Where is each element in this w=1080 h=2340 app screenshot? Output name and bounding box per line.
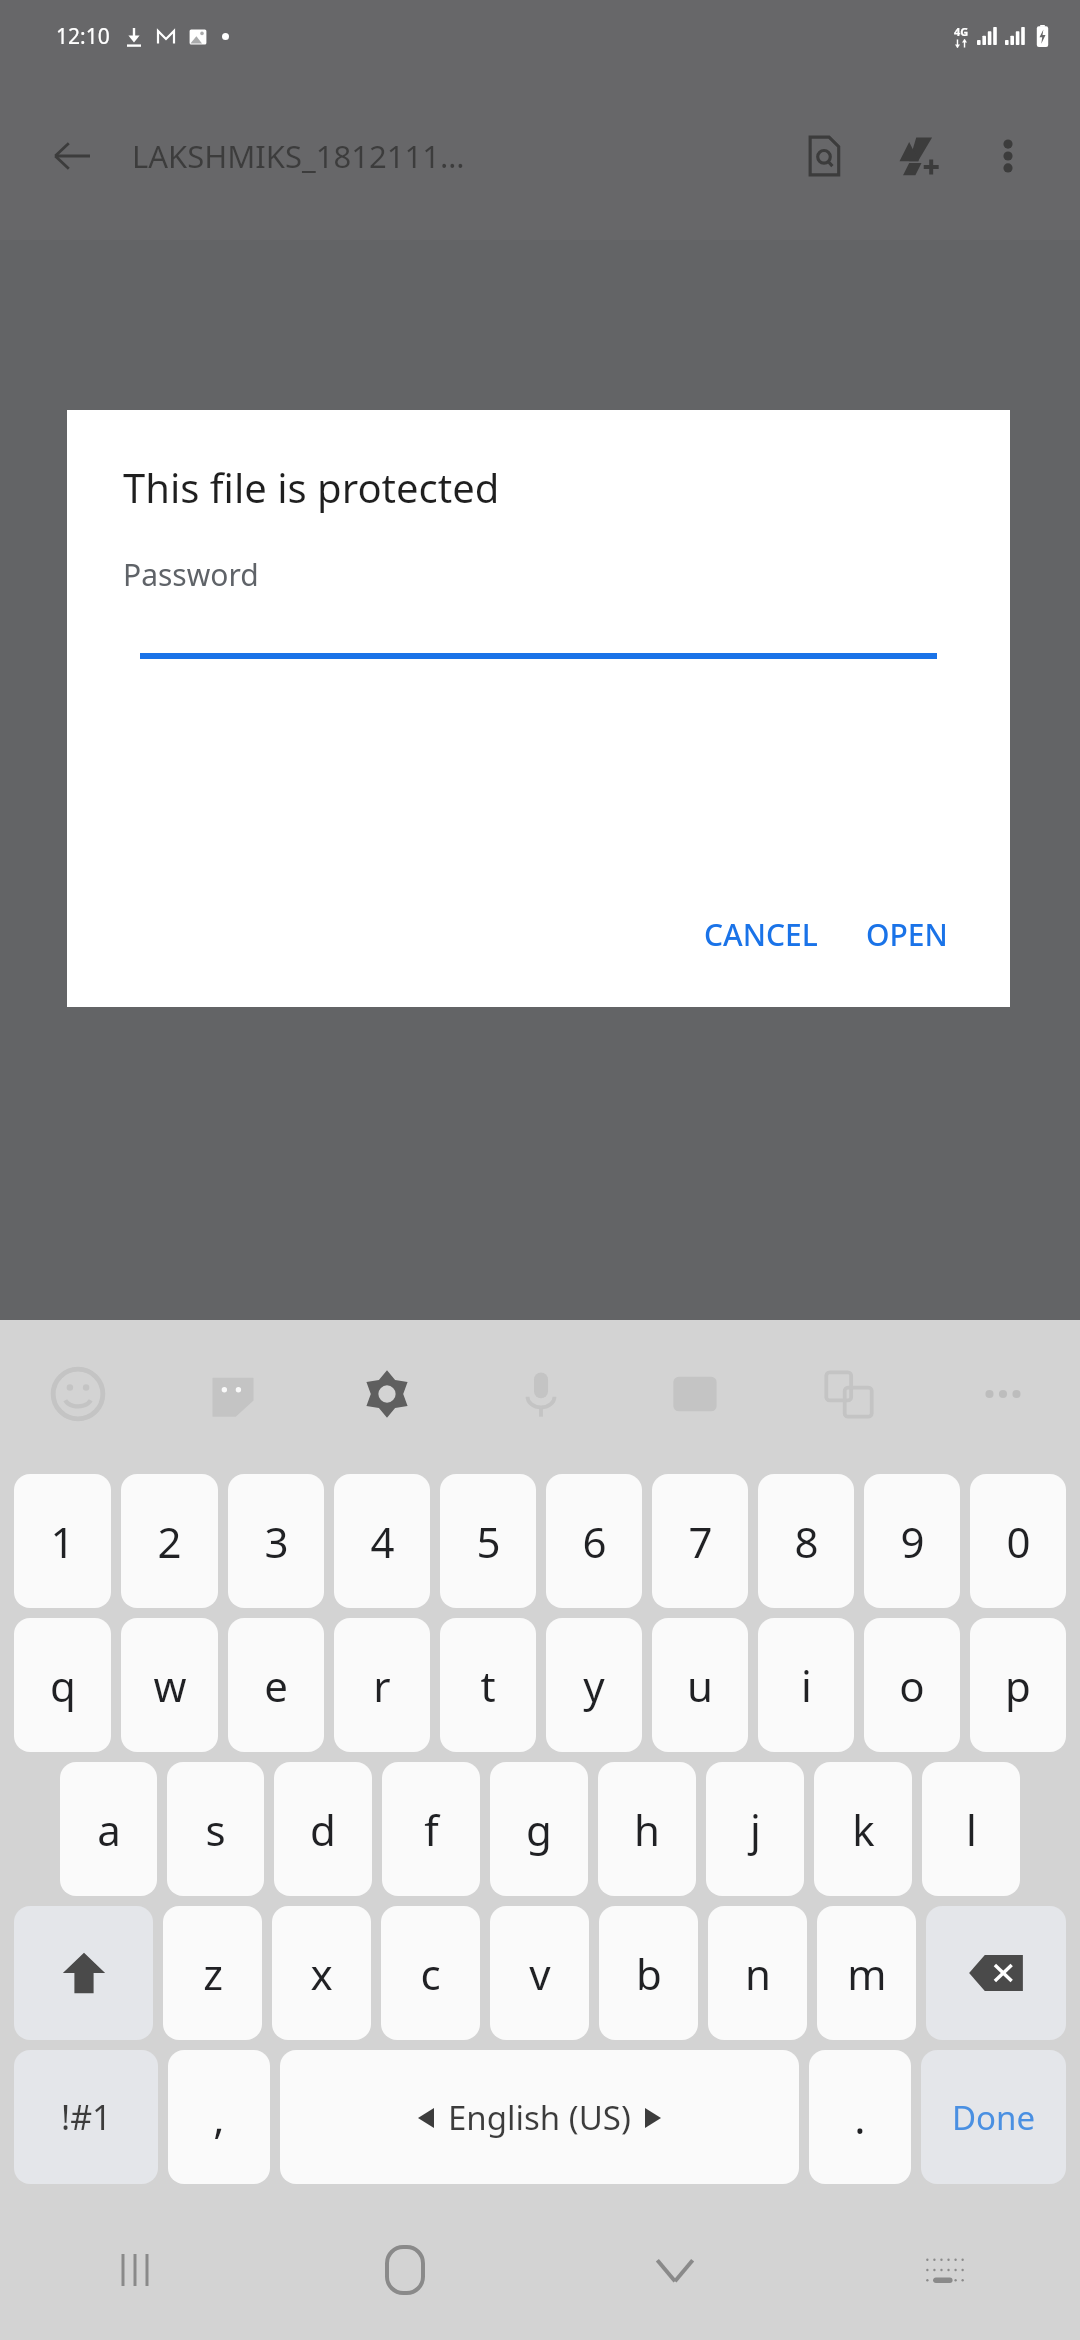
staticText: h bbox=[634, 1801, 660, 1858]
button[interactable]: 5 bbox=[440, 1474, 536, 1608]
button[interactable]: x bbox=[272, 1906, 371, 2040]
button[interactable]: Keyboard settings bbox=[310, 1320, 464, 1468]
button[interactable]: 4 bbox=[334, 1474, 430, 1608]
button[interactable]: k bbox=[814, 1762, 912, 1896]
button[interactable]: Done bbox=[921, 2050, 1066, 2184]
staticText: x bbox=[310, 1945, 333, 2002]
staticText: Done bbox=[952, 2095, 1036, 2140]
button[interactable]: g bbox=[490, 1762, 588, 1896]
staticText: . bbox=[854, 2089, 866, 2146]
button[interactable]: m bbox=[817, 1906, 916, 2040]
button[interactable]: n bbox=[708, 1906, 807, 2040]
button[interactable]: Back bbox=[34, 118, 110, 194]
button[interactable]: OPEN bbox=[850, 900, 964, 969]
staticText: c bbox=[420, 1945, 441, 2002]
button[interactable]: s bbox=[167, 1762, 264, 1896]
staticText: p bbox=[1005, 1657, 1031, 1714]
button[interactable]: Shift bbox=[14, 1906, 153, 2040]
button[interactable]: f bbox=[382, 1762, 480, 1896]
staticText: 3 bbox=[264, 1513, 289, 1570]
button[interactable]: , bbox=[168, 2050, 270, 2184]
button[interactable]: u bbox=[652, 1618, 748, 1752]
staticText: i bbox=[801, 1657, 812, 1714]
staticText: v bbox=[529, 1945, 551, 2002]
staticText: q bbox=[50, 1657, 76, 1714]
button[interactable]: Recent apps bbox=[0, 2200, 270, 2340]
button[interactable]: i bbox=[758, 1618, 854, 1752]
button[interactable]: t bbox=[440, 1618, 536, 1752]
staticText: This file is protected bbox=[123, 460, 500, 514]
button[interactable]: w bbox=[121, 1618, 218, 1752]
button[interactable]: c bbox=[381, 1906, 480, 2040]
button[interactable]: o bbox=[864, 1618, 960, 1752]
button[interactable]: 7 bbox=[652, 1474, 748, 1608]
button[interactable]: 8 bbox=[758, 1474, 854, 1608]
button[interactable]: English (US) bbox=[280, 2050, 799, 2184]
staticText: l bbox=[966, 1801, 977, 1858]
staticText: d bbox=[310, 1801, 336, 1858]
button[interactable]: p bbox=[970, 1618, 1066, 1752]
button[interactable]: Stickers bbox=[155, 1320, 310, 1468]
button[interactable]: 6 bbox=[546, 1474, 642, 1608]
button[interactable]: !#1 bbox=[14, 2050, 158, 2184]
staticText: 12:10 bbox=[56, 22, 110, 51]
staticText: s bbox=[205, 1801, 226, 1858]
button[interactable]: More options bbox=[970, 118, 1046, 194]
button[interactable]: v bbox=[490, 1906, 589, 2040]
staticText: 7 bbox=[688, 1513, 713, 1570]
staticText: r bbox=[373, 1657, 391, 1714]
staticText: m bbox=[847, 1945, 887, 2002]
staticText: 9 bbox=[900, 1513, 925, 1570]
button[interactable]: q bbox=[14, 1618, 111, 1752]
button[interactable]: 2 bbox=[121, 1474, 218, 1608]
button[interactable]: Save to Drive bbox=[880, 118, 956, 194]
staticText: j bbox=[750, 1801, 761, 1858]
staticText: f bbox=[424, 1801, 439, 1858]
button[interactable]: Backspace bbox=[926, 1906, 1066, 2040]
staticText: n bbox=[745, 1945, 771, 2002]
staticText: English (US) bbox=[448, 2095, 631, 2140]
button[interactable]: CANCEL bbox=[688, 900, 834, 969]
staticText: , bbox=[213, 2089, 225, 2146]
staticText: o bbox=[899, 1657, 925, 1714]
button[interactable]: Find in document bbox=[786, 118, 862, 194]
button[interactable]: Home bbox=[270, 2200, 540, 2340]
staticText: z bbox=[203, 1945, 223, 2002]
staticText: CANCEL bbox=[704, 914, 818, 955]
button[interactable]: Hide keyboard bbox=[540, 2200, 810, 2340]
button[interactable]: j bbox=[706, 1762, 804, 1896]
button[interactable]: l bbox=[922, 1762, 1020, 1896]
staticText: e bbox=[264, 1657, 288, 1714]
button[interactable]: e bbox=[228, 1618, 324, 1752]
staticText: 0 bbox=[1006, 1513, 1031, 1570]
button[interactable]: b bbox=[599, 1906, 698, 2040]
button[interactable]: GIF bbox=[618, 1320, 772, 1468]
staticText: y bbox=[583, 1657, 605, 1714]
button[interactable]: z bbox=[163, 1906, 262, 2040]
button[interactable]: a bbox=[60, 1762, 157, 1896]
button[interactable]: 3 bbox=[228, 1474, 324, 1608]
button[interactable]: y bbox=[546, 1618, 642, 1752]
staticText: k bbox=[852, 1801, 875, 1858]
button[interactable]: . bbox=[809, 2050, 911, 2184]
staticText: Password bbox=[123, 554, 259, 595]
button[interactable]: Change keyboard bbox=[810, 2200, 1080, 2340]
staticText: b bbox=[636, 1945, 662, 2002]
staticText: w bbox=[153, 1657, 187, 1714]
staticText: a bbox=[97, 1801, 121, 1858]
staticText: u bbox=[687, 1657, 713, 1714]
button[interactable]: 1 bbox=[14, 1474, 111, 1608]
button[interactable]: h bbox=[598, 1762, 696, 1896]
button[interactable]: r bbox=[334, 1618, 430, 1752]
staticText: LAKSHMIKS_1812111… bbox=[132, 135, 465, 177]
staticText: !#1 bbox=[61, 2094, 112, 2140]
button[interactable]: 0 bbox=[970, 1474, 1066, 1608]
staticText: 2 bbox=[157, 1513, 182, 1570]
button[interactable]: 9 bbox=[864, 1474, 960, 1608]
button[interactable]: d bbox=[274, 1762, 372, 1896]
